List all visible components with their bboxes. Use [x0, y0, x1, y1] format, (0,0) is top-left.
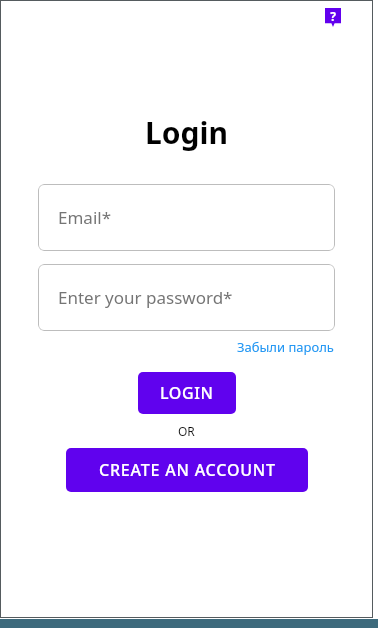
button[interactable]: Enter your password*: [38, 264, 335, 331]
button[interactable]: Забыли пароль: [236, 337, 335, 357]
staticText: OR: [178, 423, 195, 439]
staticText: Email*: [58, 206, 112, 229]
staticText: ?: [330, 8, 336, 24]
button[interactable]: CREATE AN ACCOUNT: [66, 448, 308, 492]
staticText: Забыли пароль: [237, 338, 334, 356]
staticText: CREATE AN ACCOUNT: [99, 459, 276, 481]
staticText: LOGIN: [160, 382, 214, 404]
button[interactable]: Email*: [38, 184, 335, 251]
staticText: Login: [145, 112, 228, 153]
staticText: Enter your password*: [58, 286, 233, 309]
button[interactable]: LOGIN: [138, 372, 236, 414]
button[interactable]: Help: [323, 7, 343, 27]
